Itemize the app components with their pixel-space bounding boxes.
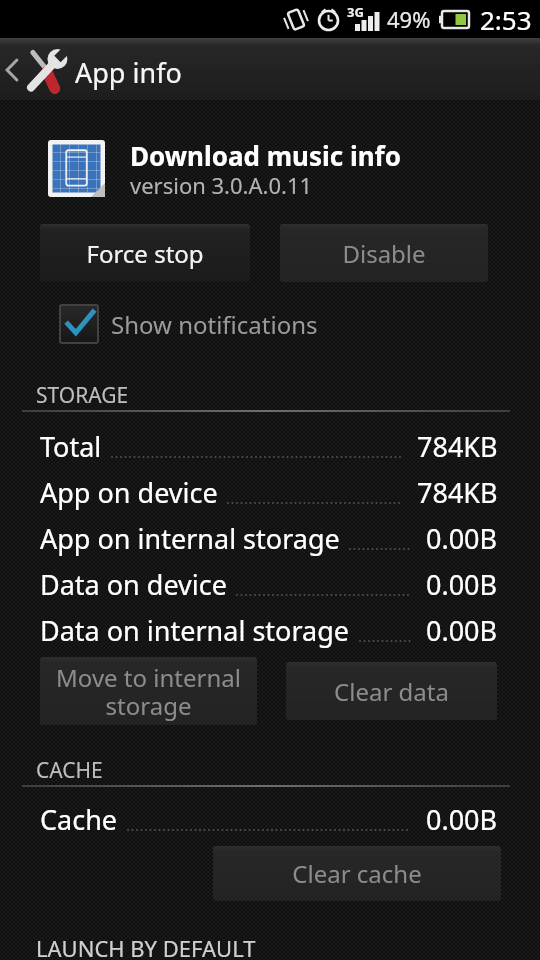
staticText: App on device	[40, 474, 218, 511]
staticText: 0.00B	[426, 566, 498, 603]
button: Clear cache	[213, 846, 501, 901]
staticText: Total	[40, 428, 102, 465]
staticText: 784KB	[417, 428, 498, 465]
staticText: version 3.0.A.0.11	[130, 170, 313, 200]
staticText: Disable	[342, 237, 426, 270]
button[interactable]: Show notifications	[59, 304, 318, 344]
staticText: Show notifications	[111, 308, 318, 341]
staticText: Data on internal storage	[40, 612, 350, 649]
staticText: App on internal storage	[40, 520, 340, 557]
staticText: 0.00B	[426, 801, 498, 838]
button: Disable	[280, 224, 488, 282]
staticText: App info	[75, 54, 182, 91]
button[interactable]: App on internal storage	[40, 515, 498, 561]
staticText: 784KB	[417, 474, 498, 511]
staticText: Cache	[40, 801, 118, 838]
button: Move to internal storage	[40, 657, 257, 725]
button[interactable]: Data on device	[40, 561, 498, 607]
staticText: Move to internal storage	[56, 661, 241, 722]
staticText: CACHE	[36, 756, 103, 785]
staticText: Data on device	[40, 566, 227, 603]
button[interactable]: Data on internal storage	[40, 607, 498, 653]
button[interactable]: App info	[0, 38, 540, 100]
button[interactable]: App on device	[40, 469, 498, 515]
staticText: Clear data	[334, 675, 449, 708]
staticText: Force stop	[86, 237, 204, 270]
staticText: 3G	[347, 3, 364, 21]
staticText: Clear cache	[292, 857, 422, 890]
staticText: 2:53	[480, 2, 532, 37]
staticText: 49%	[387, 4, 431, 34]
button[interactable]: Cache	[40, 796, 498, 842]
button[interactable]: Total	[40, 423, 498, 469]
staticText: 0.00B	[426, 612, 498, 649]
button[interactable]: Force stop	[40, 224, 250, 282]
staticText: STORAGE	[36, 381, 129, 410]
staticText: Download music info	[130, 138, 401, 173]
staticText: LAUNCH BY DEFAULT	[36, 933, 256, 960]
button: Clear data	[286, 662, 497, 720]
staticText: 0.00B	[426, 520, 498, 557]
